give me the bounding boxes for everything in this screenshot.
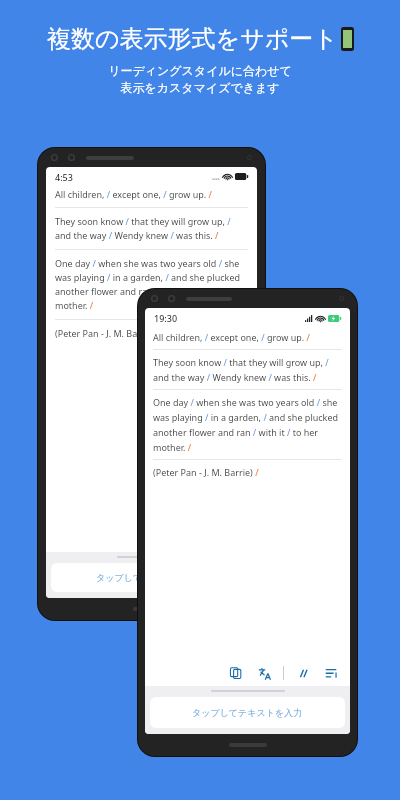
button[interactable]: Slash marks — [293, 663, 313, 683]
staticText: (Peter Pan - J. M. Barrie) / — [153, 466, 259, 478]
button[interactable]: Display format — [321, 663, 341, 683]
staticText: One day / when she was two years old / s… — [55, 257, 248, 312]
button[interactable]: Copy to clipboard — [226, 663, 246, 683]
staticText: All children, / except one, / grow up. / — [55, 188, 212, 200]
staticText: They soon know / that they will grow up,… — [153, 356, 342, 383]
button[interactable]: Translate — [254, 663, 274, 683]
staticText: All children, / except one, / grow up. / — [153, 331, 310, 343]
staticText: 複数の表示形式をサポート — [47, 24, 338, 54]
staticText: タップしてテキストを入力 — [96, 572, 207, 583]
staticText: リーディングスタイルに合わせて 表示をカスタマイズできます — [108, 63, 292, 95]
staticText: One day / when she was two years old / s… — [153, 396, 342, 453]
button[interactable]: タップしてテキストを入力 — [51, 563, 252, 592]
button[interactable]: タップしてテキストを入力 — [150, 697, 345, 728]
staticText: タップしてテキストを入力 — [192, 707, 303, 718]
staticText: (Peter Pan - J. M. Barrie) / — [55, 327, 161, 339]
staticText: They soon know / that they will grow up,… — [55, 215, 248, 242]
staticText: 19:30 — [154, 312, 178, 324]
staticText: 4:53 — [55, 171, 73, 183]
